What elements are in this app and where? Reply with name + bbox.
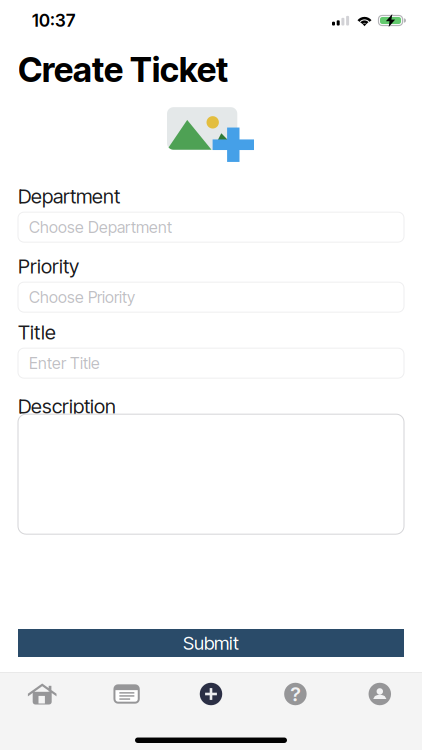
staticText: Create Ticket [18,49,228,90]
button[interactable]: Home [0,673,84,715]
staticText: Department [18,184,120,208]
staticText: 10:37 [32,10,75,31]
button[interactable]: Help [253,673,338,715]
button[interactable]: Profile [338,673,422,715]
button[interactable]: Choose Priority [18,282,404,312]
button[interactable]: Submit [18,629,404,657]
button[interactable] [18,414,404,534]
staticText: Priority [18,254,79,278]
staticText: Description [18,394,116,418]
staticText: Enter Title [29,353,100,373]
button[interactable]: Choose Department [18,212,404,242]
button[interactable]: Create ticket [169,673,253,715]
staticText: ? [290,682,300,706]
staticText: Submit [183,632,239,654]
staticText: Choose Department [29,217,172,237]
staticText: Choose Priority [29,287,135,307]
button[interactable]: Enter Title [18,348,404,378]
staticText: Title [18,320,56,344]
button[interactable]: Tickets [84,673,169,715]
